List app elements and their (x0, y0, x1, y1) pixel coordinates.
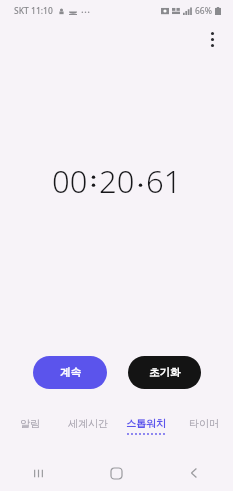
button[interactable]: 스톱워치 (117, 413, 175, 439)
staticText: 초기화 (149, 366, 181, 379)
button[interactable]: Recent apps (0, 455, 77, 491)
staticText: 00 (52, 160, 88, 202)
staticText: 타이머 (189, 417, 219, 430)
staticText: SKT 11:10 (14, 5, 53, 17)
staticText: 61 (146, 160, 182, 202)
staticText: 계속 (60, 366, 81, 379)
button[interactable]: More options (197, 24, 227, 54)
button[interactable]: 세계시간 (59, 413, 117, 439)
button[interactable]: Home (77, 455, 155, 491)
staticText: 스톱워치 (126, 417, 166, 430)
button[interactable]: 초기화 (128, 356, 201, 389)
staticText: 세계시간 (68, 417, 108, 430)
staticText: 20 (99, 160, 135, 202)
staticText: 66% (195, 5, 212, 17)
staticText: 알림 (20, 417, 40, 430)
button[interactable]: 계속 (33, 356, 107, 389)
button[interactable]: 알림 (0, 413, 59, 439)
button[interactable]: Back (155, 455, 233, 491)
button[interactable]: 타이머 (175, 413, 233, 439)
